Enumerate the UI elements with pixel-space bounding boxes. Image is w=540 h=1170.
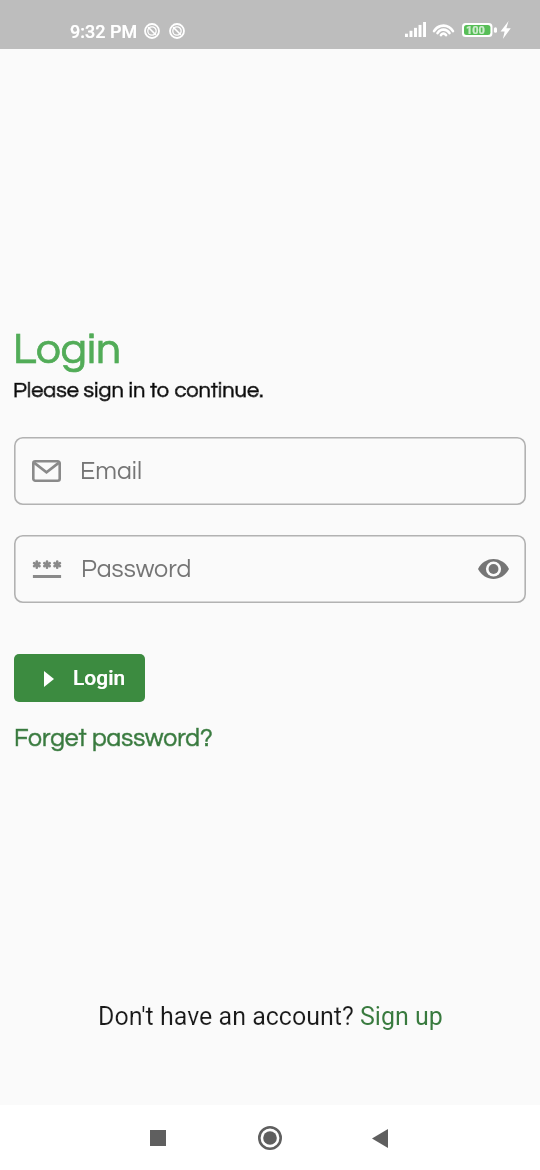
staticText: Email [80, 458, 143, 484]
staticText: 100 [466, 24, 485, 37]
button[interactable]: Sign up [360, 1002, 443, 1031]
staticText: Login [13, 327, 121, 372]
staticText: Login [13, 327, 121, 372]
button[interactable]: Recent apps [114, 1114, 202, 1162]
button[interactable]: Back [336, 1114, 424, 1162]
staticText: Forget password? [14, 726, 213, 751]
staticText: Forget password? [14, 726, 213, 751]
button[interactable]: Show password [467, 543, 519, 595]
button[interactable]: Login [14, 654, 145, 702]
staticText: Don't have an account? [98, 1002, 360, 1031]
button[interactable]: Forget password? [14, 726, 213, 751]
button[interactable]: Password [14, 535, 526, 603]
button[interactable]: Silent mode [169, 23, 185, 39]
staticText: Please sign in to continue. [13, 379, 264, 401]
staticText: Login [73, 666, 126, 691]
button[interactable]: Email [14, 437, 526, 505]
staticText: Password [81, 556, 192, 582]
button[interactable]: Home [226, 1114, 314, 1162]
staticText: 9:32 PM [70, 21, 138, 42]
button[interactable]: Do not disturb [144, 23, 160, 39]
staticText: Please sign in to continue. [13, 379, 264, 401]
